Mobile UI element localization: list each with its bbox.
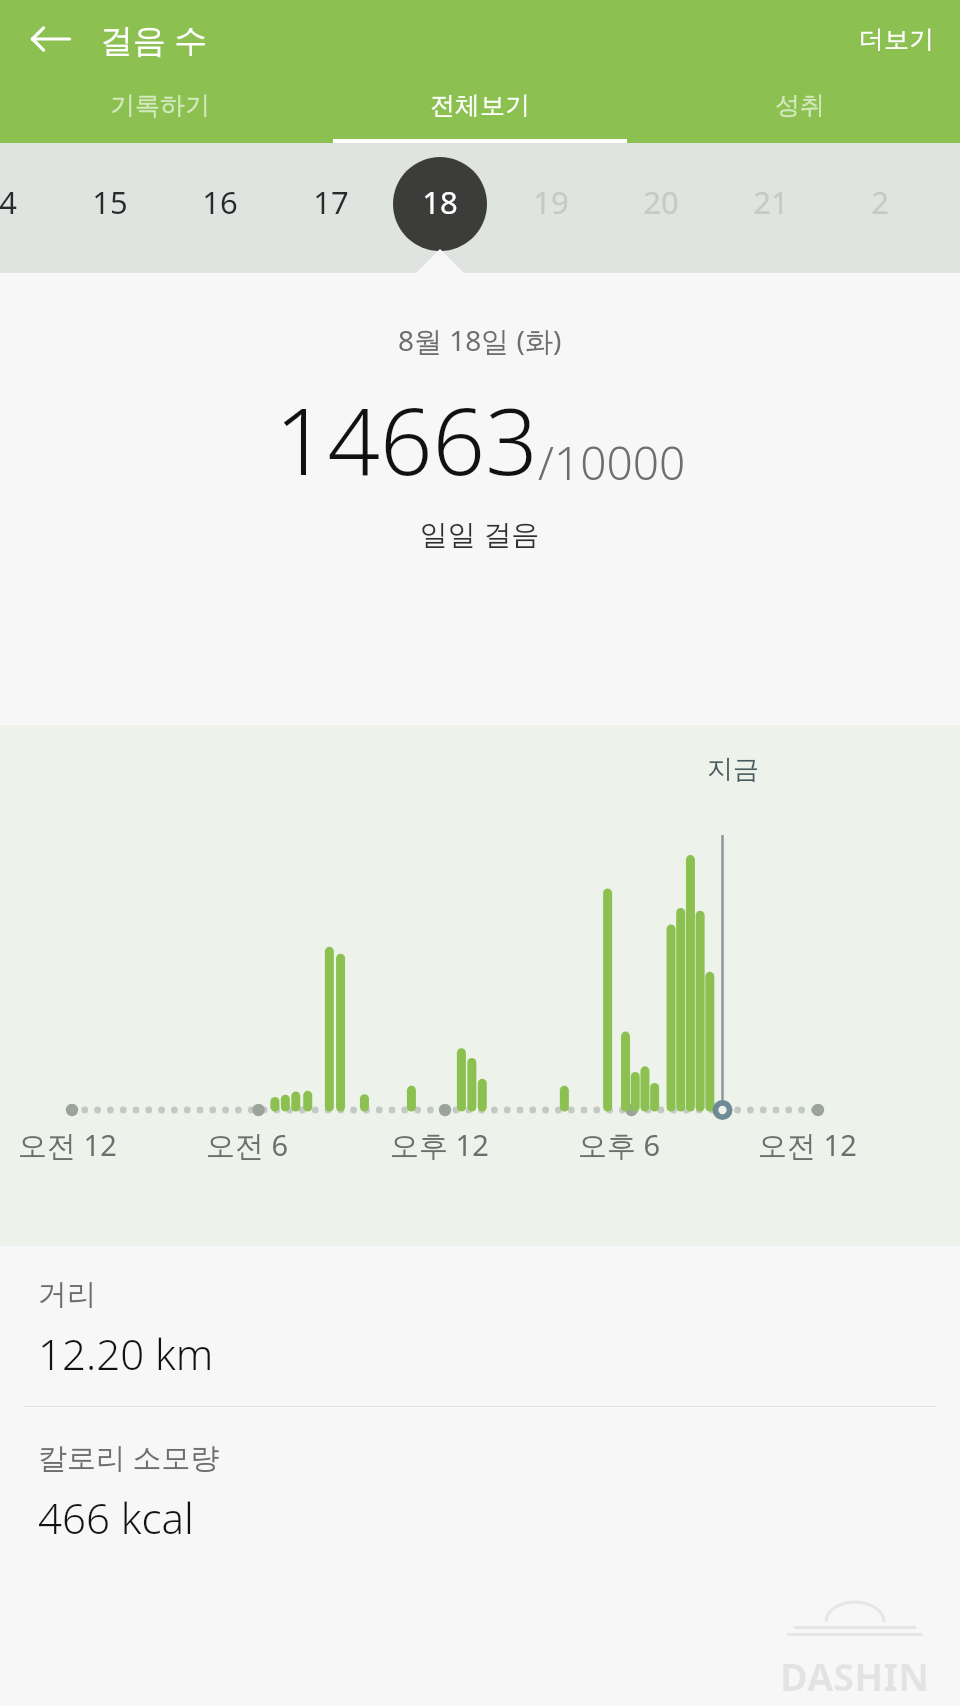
- button[interactable]: 기록하기: [0, 78, 320, 143]
- button[interactable]: 21: [737, 143, 805, 273]
- staticText: 12.20 km: [38, 1325, 214, 1382]
- staticText: 더보기: [859, 24, 934, 55]
- button[interactable]: Back: [20, 8, 82, 70]
- button[interactable]: 더보기: [833, 12, 960, 67]
- staticText: 14663: [275, 377, 538, 502]
- staticText: 기록하기: [110, 90, 210, 121]
- staticText: 4: [0, 181, 17, 223]
- staticText: 2: [871, 181, 889, 223]
- staticText: 20: [643, 181, 679, 223]
- staticText: 전체보기: [430, 90, 530, 121]
- staticText: 오후 6: [578, 1125, 661, 1165]
- button[interactable]: 거리: [0, 1246, 960, 1406]
- staticText: 오후 12: [390, 1125, 489, 1165]
- staticText: 21: [753, 181, 789, 223]
- button[interactable]: 17: [297, 143, 365, 273]
- button[interactable]: 4: [0, 143, 42, 273]
- staticText: 칼로리 소모량: [38, 1437, 220, 1477]
- staticText: 오전 12: [18, 1125, 117, 1165]
- staticText: 일일 걸음: [420, 514, 540, 552]
- staticText: 오전 12: [758, 1125, 857, 1165]
- staticText: 17: [313, 181, 349, 223]
- staticText: 거리: [38, 1276, 96, 1313]
- staticText: 466 kcal: [38, 1489, 194, 1546]
- button[interactable]: 18: [406, 143, 474, 273]
- button[interactable]: 19: [517, 143, 585, 273]
- staticText: DASHIN: [780, 1650, 930, 1702]
- staticText: 16: [202, 181, 238, 223]
- staticText: 15: [92, 181, 128, 223]
- staticText: /10000: [538, 431, 686, 494]
- staticText: 걸음 수: [100, 17, 208, 62]
- staticText: 19: [533, 181, 569, 223]
- staticText: 8월 18일 (화): [398, 321, 562, 359]
- staticText: 18: [422, 181, 458, 223]
- button[interactable]: 16: [186, 143, 254, 273]
- button[interactable]: 성취: [640, 78, 960, 143]
- staticText: 지금: [707, 753, 759, 786]
- button[interactable]: 전체보기: [320, 78, 640, 143]
- button[interactable]: 칼로리 소모량: [0, 1407, 960, 1570]
- staticText: 성취: [775, 90, 825, 121]
- button[interactable]: 20: [627, 143, 695, 273]
- staticText: 오전 6: [206, 1125, 289, 1165]
- button[interactable]: 15: [76, 143, 144, 273]
